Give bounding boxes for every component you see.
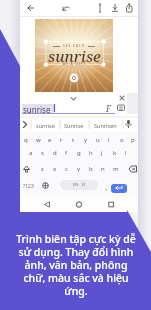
staticText: y: [84, 136, 88, 144]
staticText: sunrise: [36, 122, 55, 129]
staticText: Sunrise: [64, 122, 84, 129]
staticText: p: [131, 136, 135, 144]
staticText: e: [48, 136, 52, 144]
staticText: w: [36, 136, 41, 144]
staticText: a: [29, 149, 33, 157]
staticText: s: [41, 149, 44, 157]
staticText: SEE EACH: [63, 44, 86, 48]
staticText: g: [77, 149, 81, 157]
staticText: j: [101, 149, 103, 157]
staticText: u: [96, 136, 100, 144]
staticText: x: [53, 165, 57, 173]
staticText: ?123: [23, 183, 34, 190]
staticText: z: [41, 165, 44, 173]
staticText: c: [65, 165, 68, 173]
staticText: r: [60, 136, 63, 144]
staticText: n: [101, 165, 105, 173]
staticText: f: [65, 149, 68, 157]
staticText: Trình biên tập cực kỳ dễ sử dụng. Thay đ…: [16, 232, 136, 299]
staticText: o: [120, 136, 124, 144]
staticText: h: [89, 149, 93, 157]
staticText: b: [89, 165, 93, 173]
staticText: AS A GIFT: [63, 62, 87, 66]
button[interactable]: Trình biên tập cực kỳ dễ sử dụng. Thay đ…: [0, 232, 151, 299]
staticText: sunrise: [23, 104, 51, 115]
staticText: v: [77, 165, 81, 173]
button[interactable]: [111, 184, 127, 193]
staticText: Sunrisen: [94, 122, 117, 129]
staticText: i: [108, 136, 110, 144]
staticText: t: [72, 136, 75, 144]
staticText: l: [125, 149, 127, 157]
staticText: EN · VI: [73, 182, 86, 187]
staticText: m: [113, 165, 119, 173]
staticText: q: [24, 136, 28, 144]
staticText: d: [53, 149, 57, 157]
staticText: F: [106, 103, 111, 114]
staticText: sunrise: [48, 46, 101, 66]
staticText: .: [105, 181, 108, 192]
staticText: k: [113, 149, 117, 157]
